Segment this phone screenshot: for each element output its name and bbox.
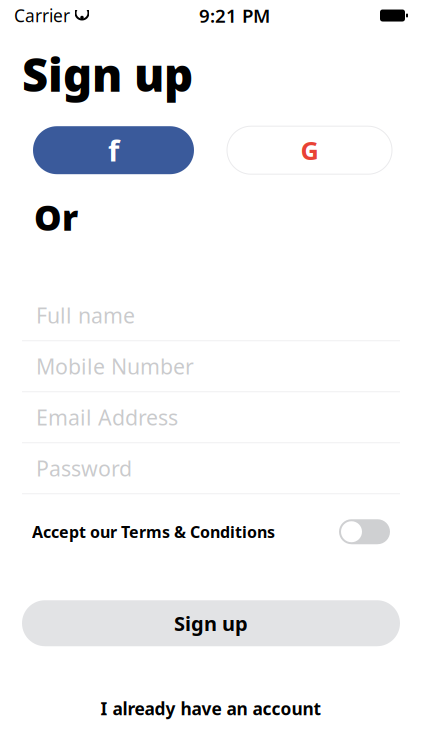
button[interactable]: Sign up with Google [227, 126, 392, 174]
staticText: Email Address [36, 403, 178, 431]
staticText: Sign up [174, 610, 248, 637]
button[interactable]: Sign up [22, 600, 400, 646]
staticText: Or [34, 194, 78, 240]
staticText: 9:21 PM [199, 3, 270, 28]
staticText: Accept our Terms & Conditions [32, 521, 275, 542]
staticText: f [108, 131, 119, 170]
staticText: G [300, 133, 318, 167]
button[interactable]: I already have an account [0, 689, 422, 728]
button[interactable]: Sign up with Facebook [33, 126, 194, 174]
button[interactable]: Accept our Terms and Conditions [339, 519, 390, 544]
staticText: Password [36, 454, 132, 482]
staticText: Sign up [22, 44, 193, 104]
staticText: Mobile Number [36, 352, 194, 380]
staticText: Carrier [14, 4, 70, 27]
staticText: I already have an account [100, 697, 321, 720]
staticText: Full name [36, 301, 135, 329]
